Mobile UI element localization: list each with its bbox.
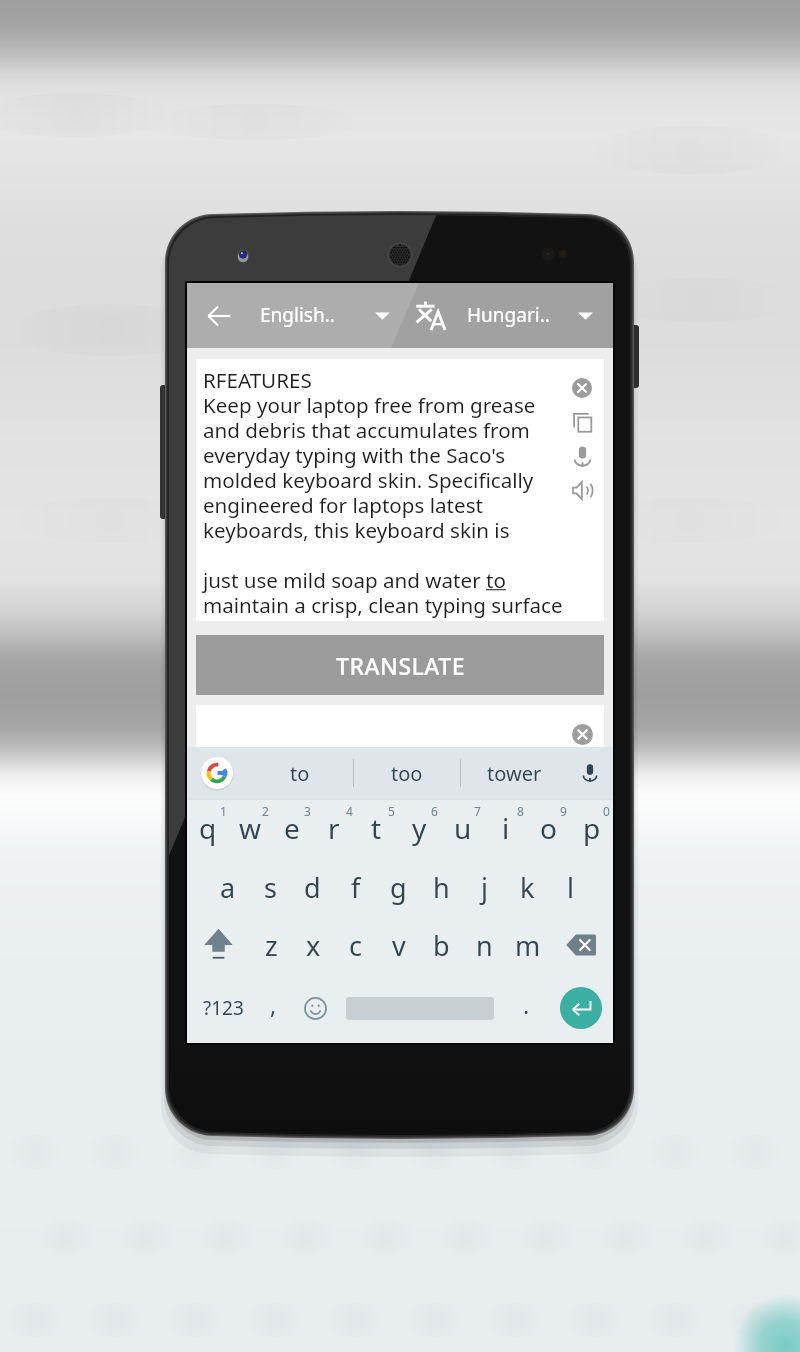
button[interactable]: 3 bbox=[271, 800, 313, 858]
button[interactable]: m bbox=[506, 916, 549, 974]
staticText: x bbox=[306, 927, 321, 964]
button[interactable]: Clear result bbox=[568, 720, 596, 748]
staticText: ?123 bbox=[203, 995, 244, 1021]
button[interactable]: z bbox=[250, 916, 292, 974]
staticText: TRANSLATE bbox=[336, 650, 465, 681]
staticText: g bbox=[390, 869, 407, 906]
staticText: k bbox=[520, 869, 535, 906]
button[interactable]: too bbox=[354, 747, 460, 799]
button[interactable]: 4 bbox=[313, 800, 355, 858]
button[interactable]: Copy bbox=[565, 405, 599, 439]
staticText: 0 bbox=[603, 803, 610, 819]
staticText: v bbox=[392, 927, 406, 964]
button[interactable]: TRANSLATE bbox=[196, 635, 604, 695]
staticText: b bbox=[433, 927, 450, 964]
staticText: 8 bbox=[517, 803, 524, 819]
button[interactable]: ?123 bbox=[193, 974, 253, 1042]
button[interactable]: English.. bbox=[251, 283, 401, 348]
button[interactable]: Voice input bbox=[567, 747, 613, 799]
staticText: English.. bbox=[260, 302, 335, 328]
staticText: d bbox=[304, 869, 321, 906]
button[interactable]: Listen bbox=[565, 473, 599, 507]
button[interactable]: tower bbox=[461, 747, 567, 799]
button[interactable]: d bbox=[291, 858, 334, 916]
button[interactable]: Enter bbox=[547, 974, 613, 1042]
staticText: 6 bbox=[431, 803, 438, 819]
staticText: 3 bbox=[304, 803, 311, 819]
staticText: w bbox=[239, 809, 262, 847]
button[interactable]: Back bbox=[195, 283, 243, 348]
button[interactable]: Clear text bbox=[565, 371, 599, 405]
button[interactable]: Emoji bbox=[293, 974, 337, 1042]
button[interactable]: Google bbox=[187, 747, 247, 799]
staticText: , bbox=[270, 989, 277, 1020]
staticText: m bbox=[515, 927, 541, 964]
button[interactable]: Microphone bbox=[565, 439, 599, 473]
staticText: to bbox=[290, 760, 310, 787]
button[interactable]: b bbox=[420, 916, 463, 974]
staticText: q bbox=[199, 809, 217, 847]
staticText: tower bbox=[487, 760, 542, 787]
staticText: 7 bbox=[474, 803, 481, 819]
button[interactable]: l bbox=[549, 858, 592, 916]
staticText: i bbox=[502, 809, 510, 847]
staticText: p bbox=[583, 809, 601, 847]
staticText: 4 bbox=[346, 803, 353, 819]
button[interactable]: to bbox=[247, 747, 353, 799]
button[interactable]: h bbox=[420, 858, 463, 916]
button[interactable]: s bbox=[249, 858, 291, 916]
button[interactable]: x bbox=[292, 916, 334, 974]
button[interactable]: . bbox=[505, 974, 547, 1042]
staticText: Hungari.. bbox=[467, 302, 550, 328]
staticText: 5 bbox=[388, 803, 395, 819]
staticText: u bbox=[454, 809, 472, 847]
staticText: h bbox=[433, 869, 450, 906]
staticText: a bbox=[220, 869, 236, 906]
button[interactable]: k bbox=[506, 858, 549, 916]
staticText: c bbox=[349, 927, 362, 964]
staticText: r bbox=[328, 809, 340, 847]
staticText: f bbox=[351, 869, 361, 906]
button[interactable]: j bbox=[463, 858, 506, 916]
staticText: RFEATURES Keep your laptop free from gre… bbox=[203, 366, 563, 619]
staticText: o bbox=[540, 809, 557, 847]
button[interactable]: a bbox=[207, 858, 249, 916]
button[interactable]: Swap languages bbox=[406, 283, 454, 348]
button[interactable]: 2 bbox=[229, 800, 271, 858]
staticText: e bbox=[284, 809, 300, 847]
button[interactable]: 5 bbox=[355, 800, 398, 858]
staticText: n bbox=[476, 927, 493, 964]
button[interactable]: 1 bbox=[187, 800, 229, 858]
staticText: 1 bbox=[220, 803, 227, 819]
button[interactable]: Space bbox=[337, 974, 505, 1042]
staticText: 2 bbox=[262, 803, 269, 819]
button[interactable]: 9 bbox=[527, 800, 570, 858]
button[interactable]: , bbox=[253, 974, 293, 1042]
staticText: s bbox=[264, 869, 277, 906]
button[interactable]: 6 bbox=[398, 800, 441, 858]
button[interactable]: 8 bbox=[484, 800, 527, 858]
button[interactable]: Backspace bbox=[549, 916, 613, 974]
staticText: l bbox=[567, 869, 574, 906]
button[interactable]: Shift bbox=[187, 916, 250, 974]
button[interactable]: v bbox=[377, 916, 420, 974]
button[interactable]: n bbox=[463, 916, 506, 974]
button[interactable]: f bbox=[334, 858, 377, 916]
staticText: t bbox=[371, 809, 382, 847]
staticText: z bbox=[265, 927, 278, 964]
staticText: . bbox=[523, 989, 530, 1020]
staticText: j bbox=[481, 869, 488, 906]
staticText: too bbox=[391, 760, 423, 787]
button[interactable]: 0 bbox=[570, 800, 613, 858]
button[interactable]: Hungari.. bbox=[459, 283, 609, 348]
button[interactable]: c bbox=[334, 916, 377, 974]
button[interactable]: 7 bbox=[441, 800, 484, 858]
button[interactable]: g bbox=[377, 858, 420, 916]
staticText: 9 bbox=[560, 803, 567, 819]
staticText: y bbox=[412, 809, 427, 847]
